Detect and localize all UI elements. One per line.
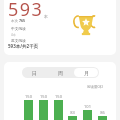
- button[interactable]: 日: [23, 68, 46, 77]
- staticText: 101: [82, 104, 93, 109]
- staticText: 4本: [11, 33, 16, 37]
- staticText: 本次: [11, 18, 19, 23]
- staticText: 日: [32, 70, 37, 76]
- staticText: 593本/共2千页: [8, 43, 39, 49]
- staticText: 中文阅读: [11, 26, 26, 31]
- staticText: 83: [67, 110, 78, 115]
- staticText: 本: [44, 14, 48, 19]
- staticText: 150: [53, 94, 64, 99]
- staticText: 150: [23, 94, 34, 99]
- other: Trophy badge: [73, 14, 99, 36]
- button[interactable]: 月: [74, 68, 98, 77]
- staticText: 英文阅读: [11, 38, 26, 43]
- staticText: 周: [58, 70, 63, 76]
- staticText: 150: [38, 94, 49, 99]
- staticText: 765: [19, 18, 26, 23]
- staticText: 月: [84, 70, 89, 76]
- staticText: 593: [8, 0, 44, 22]
- button[interactable]: 周: [48, 68, 72, 77]
- staticText: 阅读量(本): [87, 84, 104, 89]
- staticText: 86: [97, 110, 108, 115]
